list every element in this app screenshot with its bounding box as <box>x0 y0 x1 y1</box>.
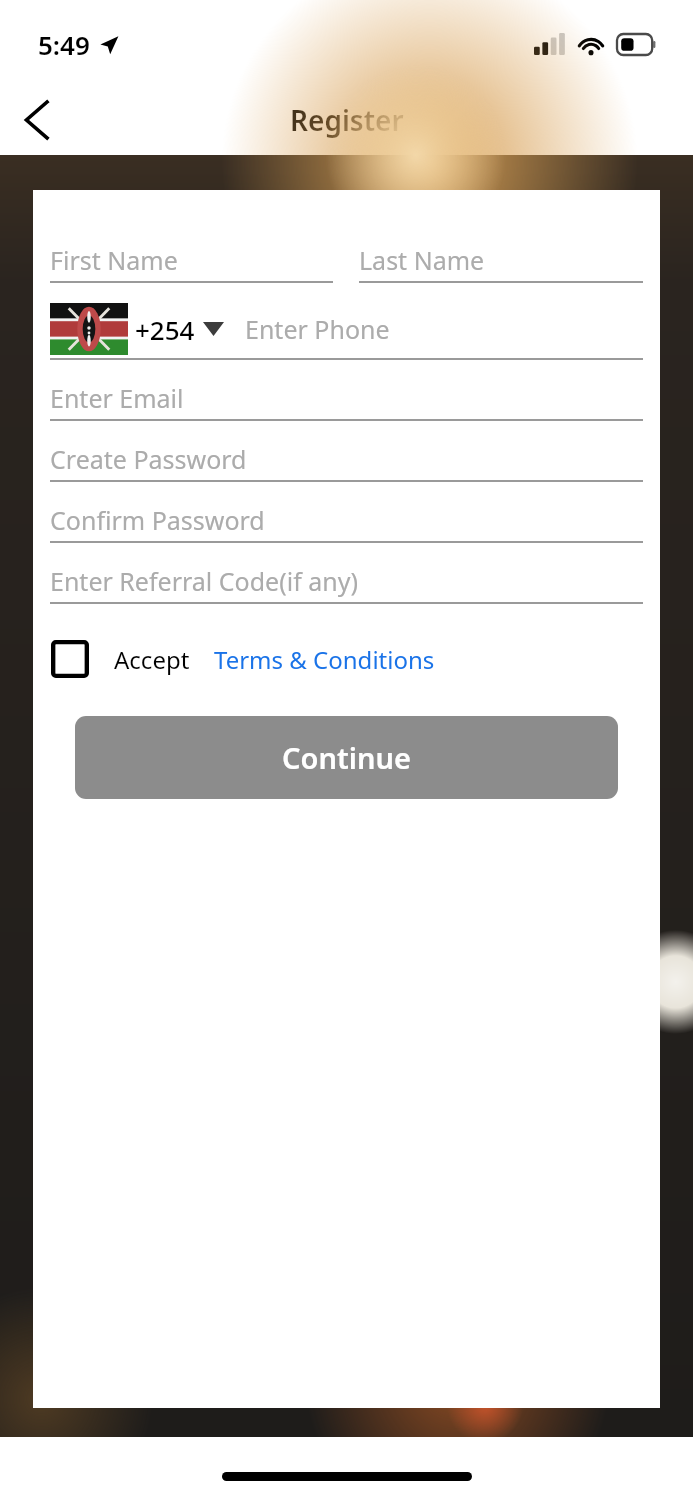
staticText: Continue <box>282 738 411 777</box>
staticText: Enter Phone <box>245 312 390 346</box>
button[interactable]: Terms & Conditions <box>214 643 435 676</box>
staticText: +254 <box>135 312 195 347</box>
button[interactable]: Accept <box>114 643 190 676</box>
button[interactable]: Accept terms checkbox <box>50 639 90 679</box>
button[interactable]: Back <box>6 89 68 151</box>
staticText: Create Password <box>50 442 247 476</box>
staticText: Enter Referral Code(if any) <box>50 564 358 598</box>
staticText: Last Name <box>359 243 485 277</box>
button[interactable]: Enter Referral Code(if any) <box>50 560 643 604</box>
button[interactable]: Last Name <box>359 239 643 283</box>
staticText: Confirm Password <box>50 503 265 537</box>
staticText: First Name <box>50 243 178 277</box>
button[interactable]: +254 <box>50 303 224 355</box>
button[interactable]: Enter Phone <box>245 312 643 346</box>
button[interactable]: Continue <box>75 716 618 799</box>
button[interactable]: Create Password <box>50 438 643 482</box>
staticText: Enter Email <box>50 381 184 415</box>
button[interactable]: First Name <box>50 239 333 283</box>
button[interactable]: Confirm Password <box>50 499 643 543</box>
staticText: 5:49 <box>38 27 90 62</box>
button[interactable]: Enter Email <box>50 377 643 421</box>
staticText: Register <box>290 101 404 139</box>
